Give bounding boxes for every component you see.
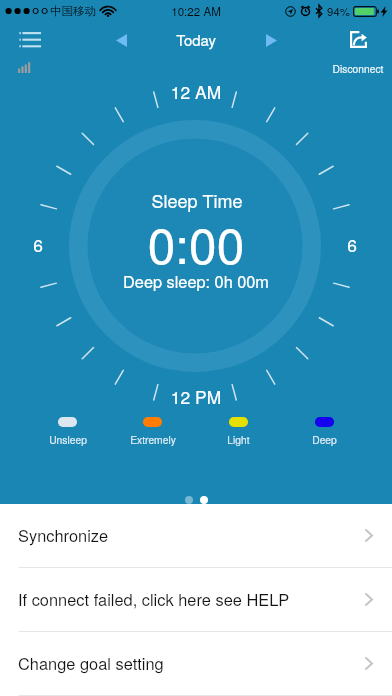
staticText: Today xyxy=(156,29,236,50)
staticText: Light xyxy=(227,432,250,447)
button[interactable]: Synchronize xyxy=(0,504,392,567)
staticText: Unsleep xyxy=(49,432,87,447)
button[interactable]: Disconnect xyxy=(326,24,390,78)
button[interactable]: Unsleep xyxy=(25,417,110,447)
staticText: Change goal setting xyxy=(18,651,164,674)
button[interactable]: Light xyxy=(195,417,281,447)
staticText: 12 PM xyxy=(96,384,296,408)
button[interactable]: Extremely xyxy=(110,417,195,447)
staticText: Deep sleep: 0h 00m xyxy=(66,269,326,292)
staticText: Disconnect xyxy=(323,61,392,75)
button[interactable]: If connect failed, click here see HELP xyxy=(0,568,392,631)
button[interactable]: Today xyxy=(156,26,236,52)
staticText: 94% xyxy=(327,3,350,19)
staticText: 12 AM xyxy=(96,79,296,103)
staticText: 0:00 xyxy=(96,207,296,276)
staticText: 10:22 AM xyxy=(171,3,221,20)
staticText: 6 xyxy=(18,232,58,256)
button[interactable]: Statistics xyxy=(8,58,38,80)
button[interactable]: Change goal setting xyxy=(0,632,392,695)
staticText: 6 xyxy=(332,232,372,256)
button[interactable]: Previous day xyxy=(104,26,138,55)
button[interactable]: Deep xyxy=(281,417,367,447)
button[interactable]: Menu xyxy=(8,25,50,56)
button[interactable]: Next day xyxy=(254,26,288,55)
staticText: Extremely xyxy=(130,432,176,447)
staticText: Synchronize xyxy=(18,523,109,546)
staticText: 中国移动 xyxy=(50,4,96,18)
staticText: If connect failed, click here see HELP xyxy=(18,587,290,610)
staticText: Deep xyxy=(312,432,337,447)
staticText: Sleep Time xyxy=(97,187,297,212)
